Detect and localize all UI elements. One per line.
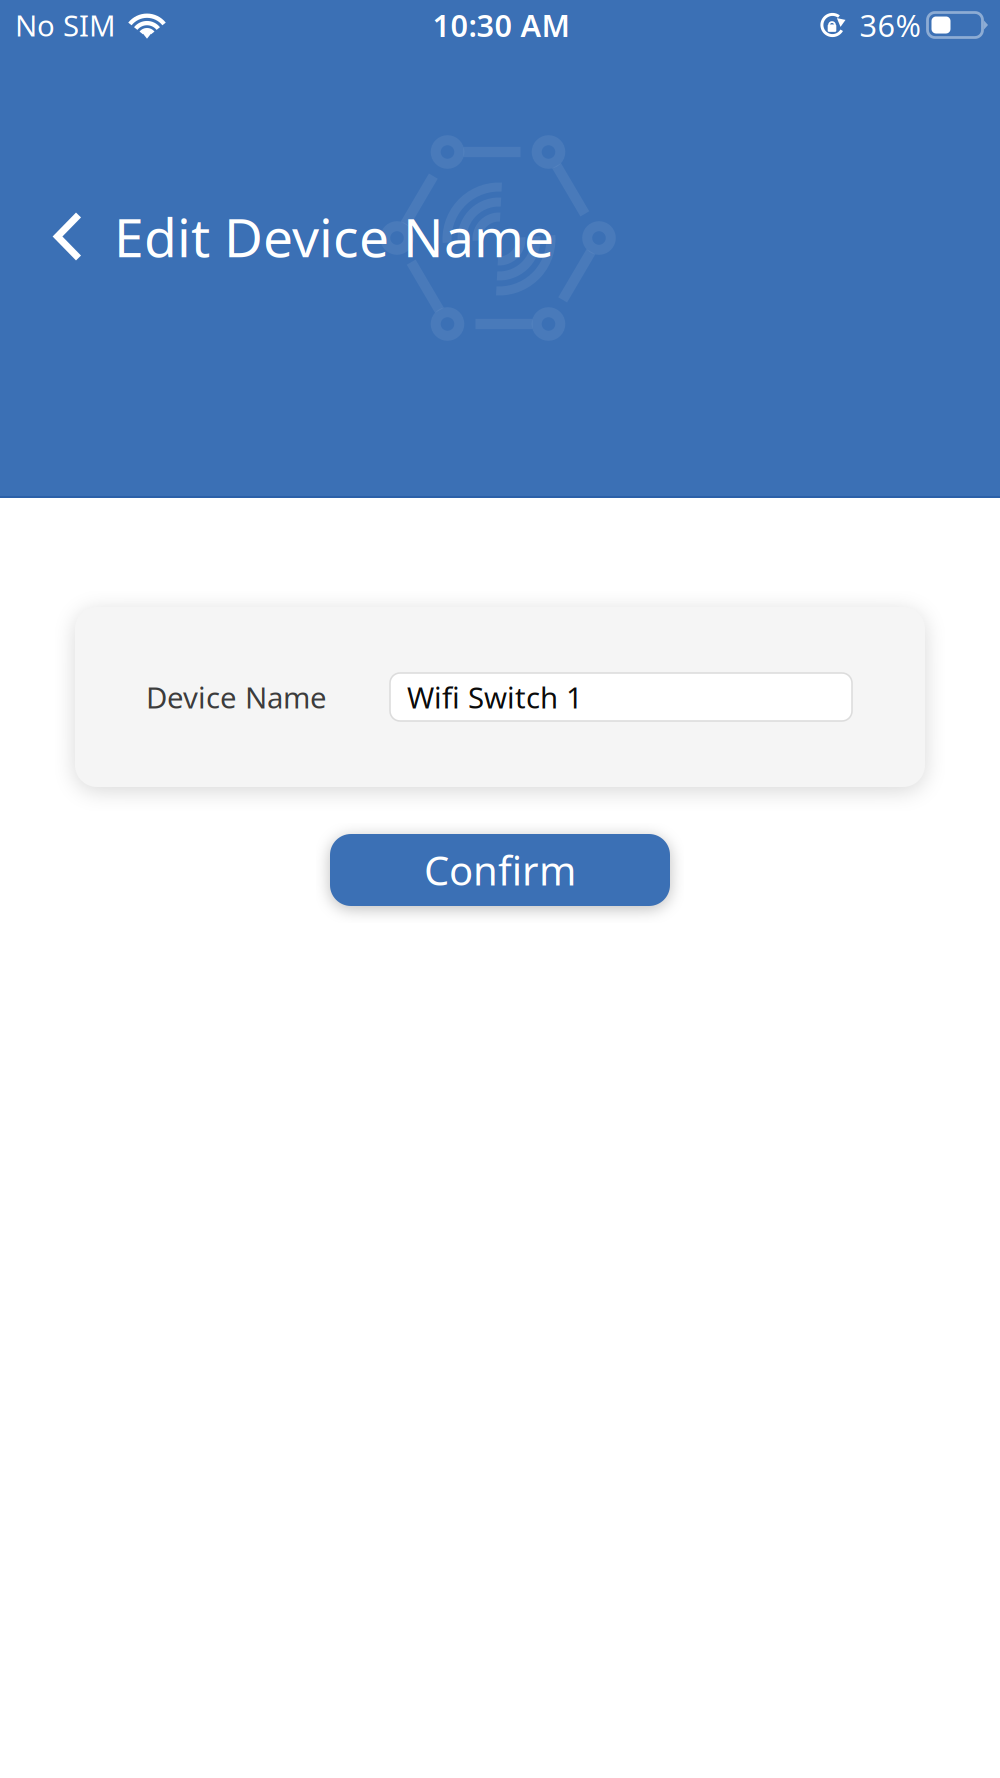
staticText: Confirm bbox=[424, 843, 576, 896]
button[interactable]: Confirm bbox=[330, 834, 670, 906]
staticText: Wifi Switch 1 bbox=[407, 677, 583, 716]
staticText: 36% bbox=[859, 5, 920, 45]
staticText: No SIM bbox=[15, 5, 116, 44]
button[interactable]: Wifi Switch 1 bbox=[390, 673, 852, 721]
staticText: Device Name bbox=[146, 677, 327, 716]
staticText: 10:30 AM bbox=[432, 5, 569, 45]
button[interactable]: Back bbox=[0, 198, 100, 275]
staticText: Edit Device Name bbox=[114, 201, 554, 272]
